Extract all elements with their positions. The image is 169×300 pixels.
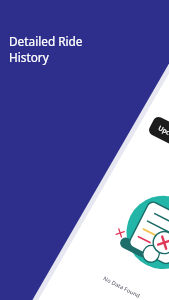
staticText: Detailed Ride History: [9, 33, 83, 65]
